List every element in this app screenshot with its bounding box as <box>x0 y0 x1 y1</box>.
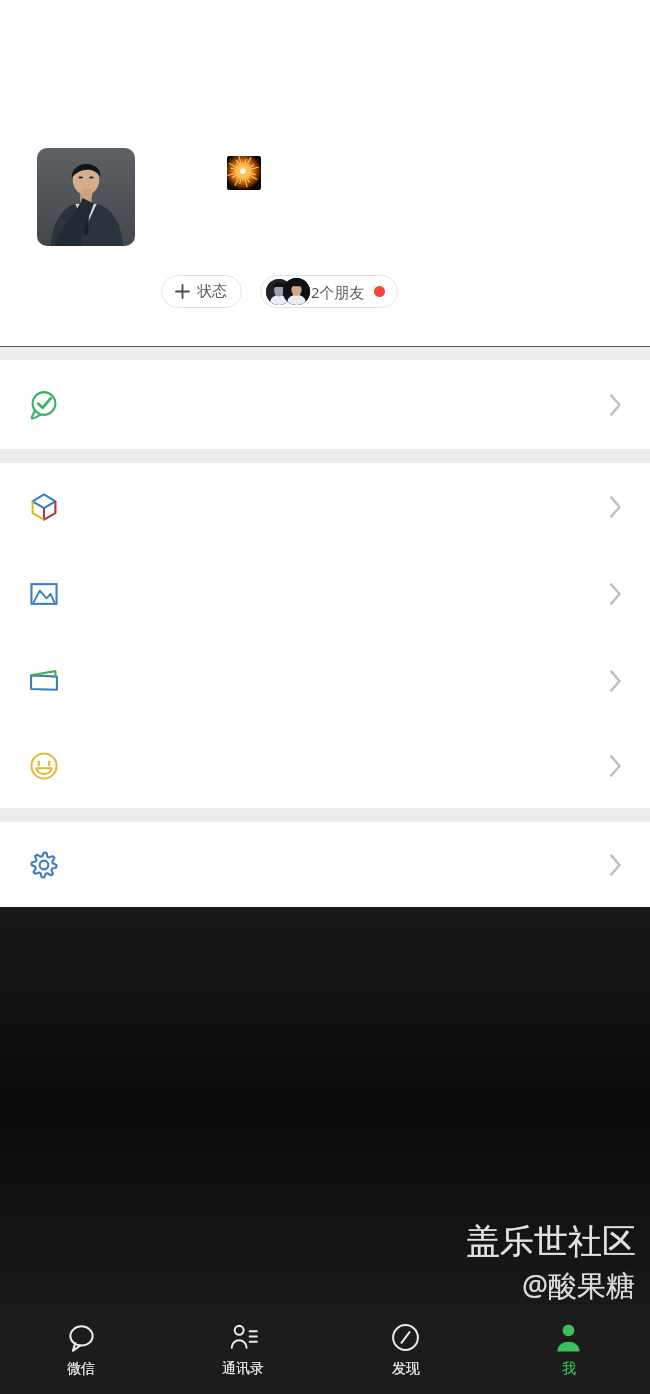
staticText: 通讯录 <box>222 1360 264 1378</box>
button[interactable]: Settings <box>0 822 650 907</box>
button[interactable]: 状态 <box>161 275 242 308</box>
button[interactable]: 通讯录 <box>162 1305 324 1394</box>
button[interactable]: 2个朋友 <box>260 275 398 308</box>
button[interactable]: Cards and Offers <box>0 637 650 724</box>
button[interactable]: Services <box>0 360 650 449</box>
button[interactable]: 发现 <box>324 1305 487 1394</box>
staticText: 我 <box>562 1360 576 1378</box>
staticText: 盖乐世社区 <box>466 1220 636 1263</box>
staticText: 状态 <box>197 282 227 301</box>
button[interactable]: Profile photo <box>37 148 135 246</box>
button[interactable]: 我 <box>487 1305 650 1394</box>
button[interactable]: Status photo <box>227 156 261 190</box>
button[interactable]: Album <box>0 550 650 637</box>
button[interactable]: Mini Programs <box>0 463 650 550</box>
button[interactable]: 微信 <box>0 1305 162 1394</box>
button[interactable]: Stickers <box>0 724 650 808</box>
staticText: 发现 <box>392 1360 420 1378</box>
staticText: @酸果糖 <box>522 1265 636 1305</box>
staticText: 2个朋友 <box>311 282 365 302</box>
staticText: 微信 <box>67 1360 95 1378</box>
